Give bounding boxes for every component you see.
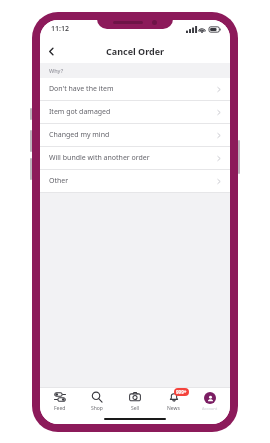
staticText: Account bbox=[202, 406, 218, 411]
button[interactable]: Sell bbox=[117, 388, 153, 415]
button[interactable]: News bbox=[155, 388, 191, 415]
staticText: Shop bbox=[91, 405, 103, 412]
staticText: Sell bbox=[131, 405, 140, 412]
button[interactable]: Account bbox=[192, 388, 228, 415]
staticText: Don't have the item bbox=[49, 84, 114, 94]
button[interactable]: Item got damaged bbox=[40, 101, 230, 123]
staticText: Feed bbox=[54, 405, 66, 412]
staticText: Cancel Order bbox=[106, 45, 165, 57]
staticText: 999+ bbox=[176, 389, 187, 395]
staticText: Item got damaged bbox=[49, 107, 111, 117]
button[interactable]: Back bbox=[40, 40, 62, 62]
button[interactable]: Shop bbox=[79, 388, 115, 415]
staticText: 11:12 bbox=[51, 24, 69, 34]
button[interactable]: Feed bbox=[42, 388, 78, 415]
staticText: Other bbox=[49, 176, 69, 186]
button[interactable]: Other bbox=[40, 170, 230, 192]
staticText: Changed my mind bbox=[49, 130, 110, 140]
button[interactable]: Don't have the item bbox=[40, 78, 230, 100]
button[interactable]: Changed my mind bbox=[40, 124, 230, 146]
staticText: Why? bbox=[49, 67, 64, 74]
staticText: Will bundle with another order bbox=[49, 153, 150, 163]
button[interactable]: Will bundle with another order bbox=[40, 147, 230, 169]
staticText: News bbox=[167, 405, 180, 412]
